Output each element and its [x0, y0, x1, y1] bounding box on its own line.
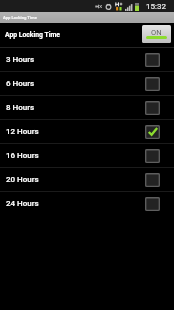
staticText: 15:32	[146, 2, 166, 11]
staticText: 12 Hours	[6, 127, 145, 136]
staticText: App Locking Time	[5, 31, 61, 39]
button[interactable]: App locking switch, on	[142, 25, 171, 43]
staticText: 20 Hours	[6, 175, 145, 184]
staticText: 6 Hours	[6, 79, 145, 88]
button[interactable]: 12 Hours	[0, 120, 174, 143]
button[interactable]: 3 Hours	[0, 48, 174, 71]
staticText: ON	[151, 28, 162, 37]
staticText: App Locking Time	[3, 15, 37, 20]
button[interactable]: 24 Hours	[0, 192, 174, 215]
staticText: 24 Hours	[6, 199, 145, 208]
button[interactable]: 16 Hours	[0, 144, 174, 167]
staticText: 8 Hours	[6, 103, 145, 112]
staticText: 3 Hours	[6, 55, 145, 64]
staticText: 16 Hours	[6, 151, 145, 160]
button[interactable]: 6 Hours	[0, 72, 174, 95]
button[interactable]: 20 Hours	[0, 168, 174, 191]
button[interactable]: 8 Hours	[0, 96, 174, 119]
